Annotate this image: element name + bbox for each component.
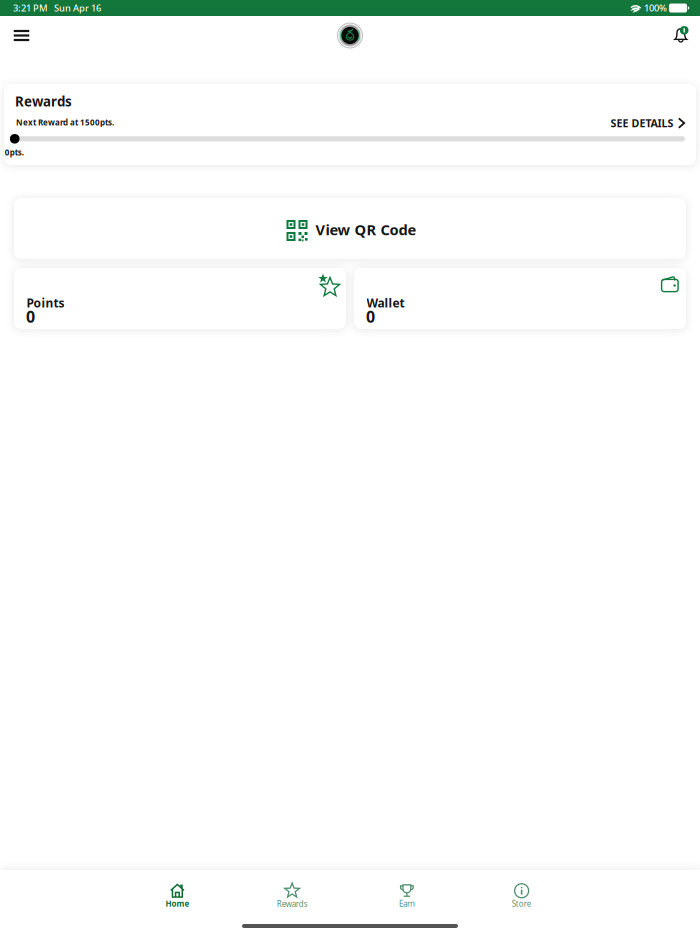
button[interactable]: Menu (0, 16, 43, 55)
button[interactable]: Rewards (235, 883, 350, 909)
button[interactable]: Notifications (662, 16, 700, 55)
button[interactable]: View QR Code (14, 198, 686, 259)
button[interactable]: Points (14, 268, 346, 329)
button[interactable]: Earn (349, 883, 464, 909)
staticText: SEE DETAILS (610, 116, 673, 130)
button[interactable]: SEE DETAILS (608, 113, 687, 133)
staticText: 0 (366, 306, 375, 327)
staticText: Earn (399, 898, 415, 909)
staticText: View QR Code (315, 220, 416, 239)
staticText: 0pts. (5, 147, 24, 158)
staticText: 3:21 PM Sun Apr 16 (13, 2, 101, 14)
staticText: Store (512, 898, 532, 909)
staticText: Wallet (366, 295, 404, 311)
staticText: Points (26, 295, 64, 311)
button[interactable]: Home logo (330, 16, 370, 55)
staticText: 0 (26, 306, 35, 327)
button[interactable]: Wallet (354, 268, 686, 329)
staticText: Home (165, 898, 189, 909)
staticText: Rewards (277, 898, 308, 909)
staticText: 100% (642, 2, 669, 14)
button[interactable]: Home (120, 883, 235, 909)
staticText: Rewards (15, 92, 72, 110)
button[interactable]: Store (464, 883, 579, 909)
staticText: Next Reward at 1500pts. (16, 117, 114, 128)
